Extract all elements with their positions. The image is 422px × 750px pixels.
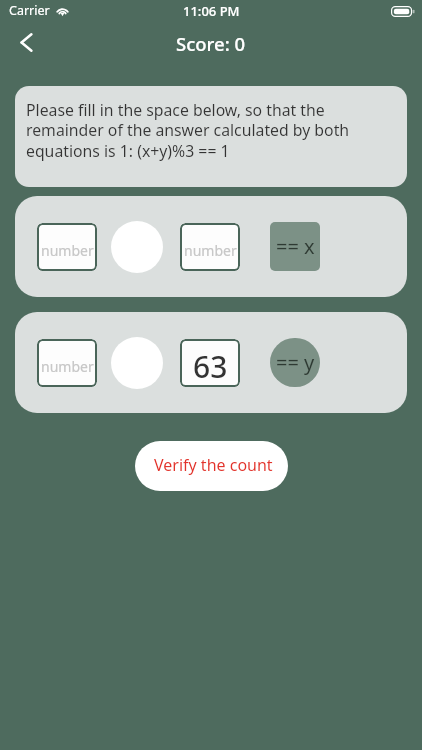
staticText: Verify the count [154,454,273,476]
button[interactable]: number [180,223,240,271]
staticText: 11:06 PM [183,2,240,20]
button[interactable]: number [37,339,97,387]
staticText: Score: 0 [176,31,246,56]
button[interactable]: == y [270,338,320,387]
button[interactable]: == x [270,222,320,271]
staticText: number [41,357,94,376]
staticText: Please fill in the space below, so that … [26,99,395,162]
staticText: == y [276,349,315,376]
staticText: Carrier [9,2,50,19]
button[interactable]: number [37,223,97,271]
staticText: number [41,241,94,260]
staticText: number [184,241,237,260]
button[interactable]: Verify the count [135,441,288,491]
staticText: == x [276,233,315,260]
button[interactable]: Back [2,22,50,62]
staticText: 63 [193,346,228,387]
button[interactable]: Operator [111,221,163,273]
button[interactable]: 63 [180,339,240,387]
button[interactable]: Operator [111,337,163,389]
